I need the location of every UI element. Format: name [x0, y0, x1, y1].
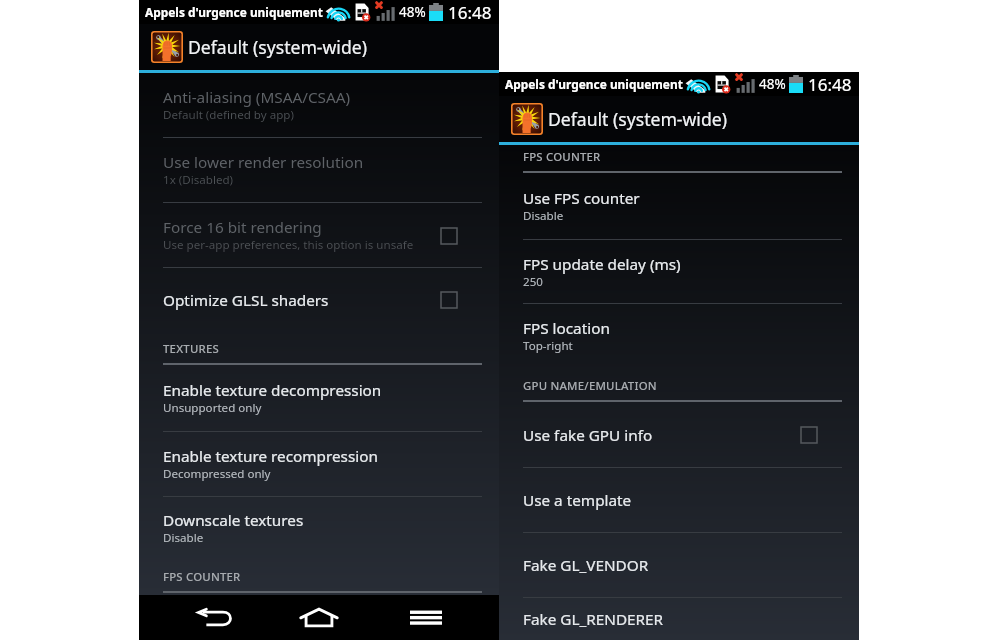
staticText: FPS COUNTER — [163, 569, 241, 585]
staticText: 48% — [759, 75, 786, 93]
button[interactable]: Force 16 bit rendering — [139, 203, 499, 268]
staticText: Default (system-wide) — [188, 35, 367, 59]
button[interactable]: Fake GL_VENDOR — [499, 533, 859, 598]
button[interactable]: Optimize GLSL shaders — [139, 268, 499, 332]
button[interactable]: Enable texture decompression — [139, 365, 499, 432]
staticText: Optimize GLSL shaders — [163, 290, 329, 311]
staticText: GPU NAME/EMULATION — [523, 378, 657, 394]
staticText: Use a template — [523, 490, 632, 511]
staticText: Default (system-wide) — [548, 107, 727, 131]
staticText: FPS update delay (ms) — [523, 254, 681, 275]
staticText: FPS location — [523, 318, 610, 339]
staticText: Enable texture recompression — [163, 446, 378, 467]
staticText: Use FPS counter — [523, 188, 640, 209]
staticText: Force 16 bit rendering — [163, 217, 322, 238]
staticText: Disable — [163, 530, 204, 546]
staticText: Unsupported only — [163, 400, 262, 416]
staticText: Anti-aliasing (MSAA/CSAA) — [163, 87, 351, 108]
button[interactable]: Back — [139, 595, 259, 640]
staticText: Fake GL_VENDOR — [523, 555, 649, 576]
button[interactable]: FPS update delay (ms) — [499, 240, 859, 304]
button[interactable]: Use FPS counter — [499, 173, 859, 240]
button[interactable]: Anti-aliasing (MSAA/CSAA) — [139, 73, 499, 138]
staticText: Enable texture decompression — [163, 380, 382, 401]
staticText: Fake GL_RENDERER — [523, 609, 664, 630]
staticText: Use fake GPU info — [523, 425, 653, 446]
staticText: Decompressed only — [163, 466, 271, 482]
button[interactable]: Default (system-wide) profile — [499, 96, 859, 142]
staticText: 48% — [399, 3, 426, 21]
button[interactable]: Home — [259, 595, 379, 640]
staticText: FPS COUNTER — [523, 149, 601, 165]
button[interactable]: Recent apps — [379, 595, 499, 640]
staticText: Downscale textures — [163, 510, 304, 531]
staticText: Disable — [523, 208, 564, 224]
button[interactable]: Use fake GPU info — [499, 402, 859, 468]
button[interactable]: Use a template — [499, 468, 859, 533]
staticText: Appels d'urgence uniquement — [145, 4, 323, 20]
staticText: 16:48 — [448, 1, 492, 24]
staticText: Appels d'urgence uniquement — [505, 76, 683, 92]
staticText: Use per-app preferences, this option is … — [163, 237, 414, 253]
staticText: 1x (Disabled) — [163, 172, 234, 188]
button[interactable]: Downscale textures — [139, 497, 499, 560]
button[interactable]: Use lower render resolution — [139, 138, 499, 203]
staticText: Use lower render resolution — [163, 152, 364, 173]
staticText: 250 — [523, 274, 543, 290]
button[interactable]: Fake GL_RENDERER — [499, 598, 859, 640]
button[interactable]: FPS location — [499, 304, 859, 369]
staticText: Top-right — [523, 338, 573, 354]
staticText: Default (defined by app) — [163, 107, 294, 123]
button[interactable]: Default (system-wide) profile — [139, 24, 499, 70]
staticText: TEXTURES — [163, 341, 219, 357]
button[interactable]: Enable texture recompression — [139, 432, 499, 497]
staticText: 16:48 — [808, 73, 852, 96]
